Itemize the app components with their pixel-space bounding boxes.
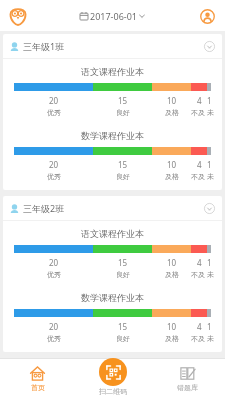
staticText: 不及格	[191, 270, 207, 279]
staticText: 三年级2班	[23, 202, 65, 214]
staticText: 1	[207, 159, 211, 170]
staticText: 优秀	[47, 108, 61, 117]
staticText: 15	[118, 159, 128, 170]
staticText: 首页	[31, 383, 45, 392]
staticText: 4	[197, 321, 202, 332]
staticText: 错题库	[177, 383, 198, 392]
staticText: 不及格	[191, 172, 207, 181]
other: Collapse	[203, 202, 215, 214]
staticText: 未计	[207, 108, 211, 117]
staticText: 20	[49, 321, 59, 332]
staticText: 10	[167, 95, 177, 106]
staticText: 4	[197, 95, 202, 106]
staticText: 15	[118, 257, 128, 268]
staticText: 4	[197, 257, 202, 268]
staticText: 不及格	[191, 334, 207, 343]
staticText: 语文课程作业本	[3, 66, 222, 77]
button[interactable]: 扫二维码	[78, 358, 148, 400]
staticText: 优秀	[47, 270, 61, 279]
staticText: 20	[49, 159, 59, 170]
staticText: 良好	[116, 270, 130, 279]
staticText: 10	[167, 321, 177, 332]
staticText: 优秀	[47, 172, 61, 181]
staticText: 良好	[116, 334, 130, 343]
staticText: 未计	[207, 270, 211, 279]
staticText: 1	[207, 95, 211, 106]
staticText: 4	[197, 159, 202, 170]
other: Collapse	[203, 40, 215, 52]
staticText: 扫二维码	[99, 387, 127, 396]
button[interactable]: Account	[197, 6, 217, 26]
staticText: 1	[207, 321, 211, 332]
staticText: 不及格	[191, 108, 207, 117]
staticText: 良好	[116, 172, 130, 181]
staticText: 10	[167, 257, 177, 268]
staticText: 未计	[207, 334, 211, 343]
staticText: 良好	[116, 108, 130, 117]
staticText: 语文课程作业本	[3, 228, 222, 239]
staticText: 三年级1班	[23, 40, 65, 52]
staticText: 20	[49, 257, 59, 268]
staticText: 15	[118, 321, 128, 332]
staticText: 优秀	[47, 334, 61, 343]
staticText: 及格	[165, 108, 179, 117]
staticText: 2017-06-01	[90, 10, 137, 22]
staticText: 15	[118, 95, 128, 106]
button[interactable]: 首页	[0, 358, 75, 400]
staticText: 数学课程作业本	[3, 130, 222, 141]
staticText: 1	[207, 257, 211, 268]
button[interactable]: 三年级2班	[3, 196, 222, 220]
staticText: 及格	[165, 334, 179, 343]
staticText: 10	[167, 159, 177, 170]
staticText: 未计	[207, 172, 211, 181]
staticText: 20	[49, 95, 59, 106]
staticText: 及格	[165, 270, 179, 279]
button[interactable]: Logo	[7, 5, 29, 27]
button[interactable]: 三年级1班	[3, 34, 222, 58]
button[interactable]: 错题库	[150, 358, 225, 400]
staticText: 及格	[165, 172, 179, 181]
button[interactable]: 2017-06-01	[74, 7, 151, 25]
staticText: 数学课程作业本	[3, 292, 222, 303]
